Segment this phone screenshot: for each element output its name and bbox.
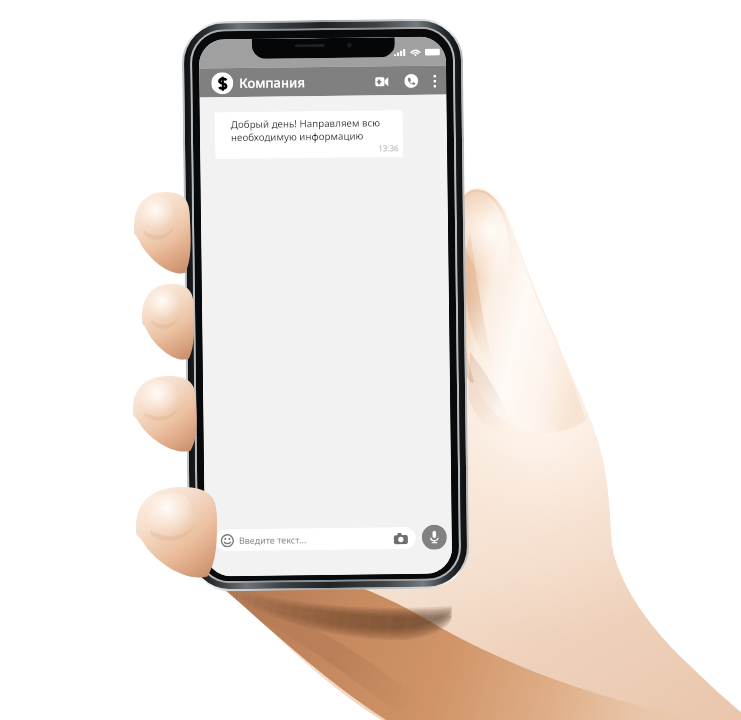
- button[interactable]: Camera: [392, 529, 409, 547]
- staticText: Добрый день! Направляем всю необходимую …: [231, 116, 399, 144]
- button[interactable]: Введите текст...: [216, 527, 416, 551]
- button[interactable]: Company avatar: [211, 72, 233, 94]
- button[interactable]: More options: [427, 71, 441, 91]
- button[interactable]: Добрый день! Направляем всю необходимую …: [215, 110, 403, 159]
- button[interactable]: Voice message: [422, 524, 447, 550]
- staticText: Компания: [239, 73, 305, 92]
- staticText: Введите текст...: [239, 533, 307, 546]
- button[interactable]: Call: [401, 71, 421, 91]
- staticText: 13:36: [378, 142, 399, 153]
- button[interactable]: Video call: [372, 71, 390, 91]
